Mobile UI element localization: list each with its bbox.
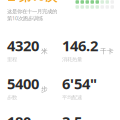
staticText: 3.5 [62, 112, 82, 120]
staticText: 第10次跑步训练 [7, 15, 43, 22]
staticText: 步 [41, 85, 48, 93]
staticText: 6'54" [62, 74, 97, 93]
staticText: 这是你在十一月完成的 [7, 8, 57, 15]
staticText: 平均配速 [62, 94, 82, 101]
staticText: 千卡 [100, 47, 114, 55]
staticText: 消耗热量 [62, 56, 82, 63]
staticText: 180 [7, 112, 31, 120]
staticText: 米 [41, 47, 48, 55]
staticText: 4320 [7, 36, 39, 55]
staticText: 第10次 [19, 0, 57, 4]
staticText: 146.2 [62, 36, 98, 55]
staticText: 步数 [7, 94, 17, 101]
staticText: 里程 [7, 56, 17, 63]
staticText: 5400 [7, 74, 39, 93]
